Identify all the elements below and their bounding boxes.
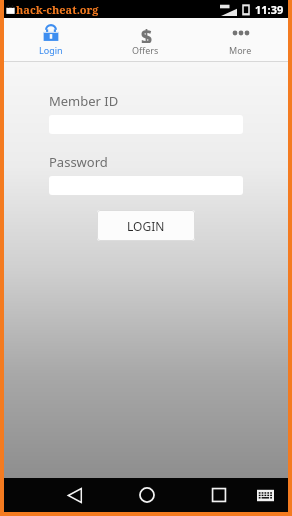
- button[interactable]: Login: [4, 18, 98, 61]
- staticText: Login: [39, 44, 63, 56]
- button[interactable]: Back: [60, 480, 90, 510]
- button[interactable]: LOGIN: [97, 210, 195, 241]
- staticText: LOGIN: [127, 218, 165, 234]
- staticText: 11:39: [255, 2, 284, 17]
- staticText: hack-cheat.org: [16, 2, 99, 17]
- staticText: More: [229, 44, 252, 56]
- staticText: Member ID: [49, 92, 119, 110]
- button[interactable]: More: [193, 18, 288, 61]
- button[interactable]: Home: [132, 480, 162, 510]
- button[interactable]: Switch keyboard: [250, 480, 280, 510]
- staticText: Offers: [132, 44, 159, 56]
- button[interactable]: $: [98, 18, 193, 61]
- staticText: Password: [49, 153, 108, 171]
- button[interactable]: Recent apps: [204, 480, 234, 510]
- staticText: $: [141, 24, 152, 43]
